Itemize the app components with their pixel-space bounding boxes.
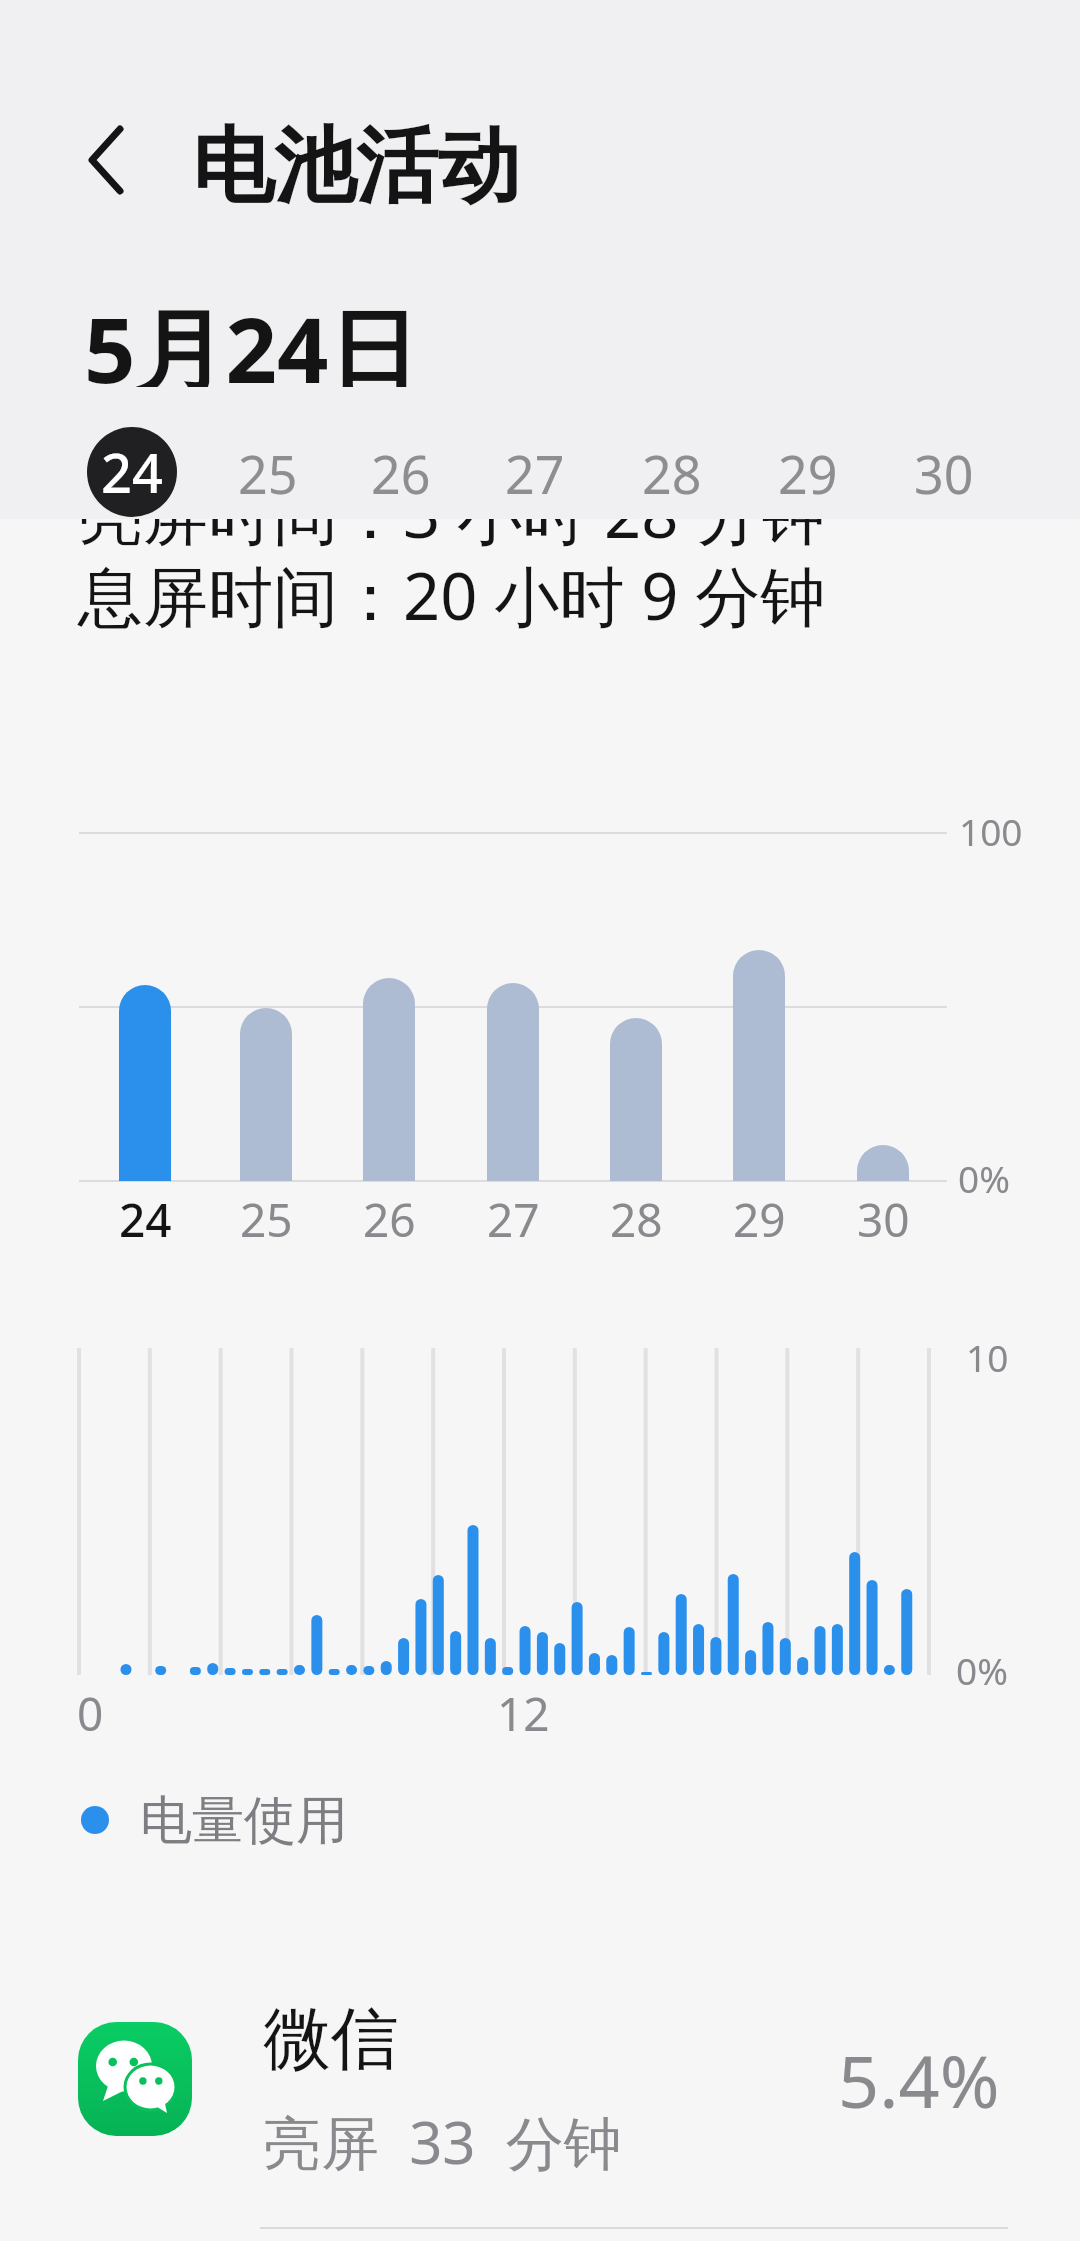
staticText: 28 — [642, 438, 702, 498]
button[interactable]: 25 — [218, 438, 318, 498]
staticText: 28 — [610, 1188, 663, 1248]
staticText: 25 — [240, 1188, 293, 1248]
staticText: 微信 — [263, 1997, 399, 2077]
staticText: 29 — [733, 1188, 786, 1248]
button[interactable]: 27 — [485, 438, 585, 498]
staticText: 5月24日 — [84, 287, 419, 387]
staticText: 26 — [363, 1188, 416, 1248]
button[interactable]: 29 — [758, 438, 858, 498]
staticText: 12 — [497, 1682, 550, 1742]
staticText: 息屏时间：20 小时 9 分钟 — [78, 551, 826, 640]
button[interactable]: 28 — [622, 438, 722, 498]
staticText: 30 — [914, 438, 974, 498]
button[interactable]: 微信 — [55, 1995, 1020, 2180]
staticText: 25 — [238, 438, 298, 498]
button[interactable]: 30 — [894, 438, 994, 498]
staticText: 26 — [371, 438, 431, 498]
staticText: 24 — [101, 435, 163, 509]
staticText: 27 — [487, 1188, 540, 1248]
button[interactable] — [70, 115, 140, 205]
staticText: 10 — [966, 1332, 1009, 1382]
button[interactable]: 24 — [87, 427, 177, 517]
staticText: 0% — [958, 1153, 1010, 1203]
staticText: 30 — [857, 1188, 910, 1248]
staticText: 29 — [778, 438, 838, 498]
staticText: 27 — [505, 438, 565, 498]
button[interactable]: 26 — [351, 438, 451, 498]
staticText: 0 — [77, 1682, 104, 1742]
staticText: 电量使用 — [140, 1788, 348, 1852]
staticText: 24 — [119, 1188, 172, 1248]
staticText: 5.4% — [838, 2031, 1000, 2111]
staticText: 100 — [959, 806, 1023, 856]
staticText: 电池活动 — [192, 115, 520, 215]
staticText: 0% — [956, 1645, 1008, 1695]
staticText: 亮屏时间：3 小时 28 分钟 — [78, 469, 826, 558]
staticText: 亮屏 33 分钟 — [263, 2102, 622, 2172]
